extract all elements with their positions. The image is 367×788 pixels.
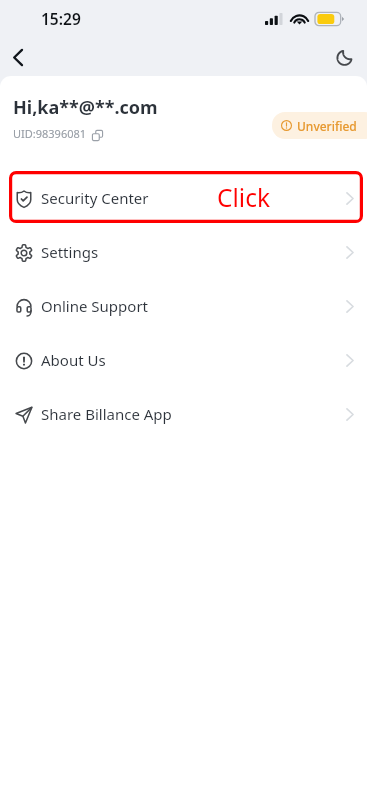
button[interactable]: Settings [0,225,367,279]
staticText: Unverified [297,118,357,134]
staticText: UID:98396081 [13,126,87,141]
button[interactable]: Online Support [0,279,367,333]
button[interactable]: Back [0,39,36,75]
staticText: Share Billance App [41,404,172,424]
staticText: Click [217,181,270,214]
button[interactable]: Unverified [272,112,367,139]
button[interactable]: Copy UID [92,130,103,141]
staticText: About Us [41,350,106,370]
staticText: Online Support [41,296,148,316]
button[interactable]: Dark mode [326,39,362,75]
button[interactable]: About Us [0,333,367,387]
staticText: Security Center [41,188,149,208]
staticText: 15:29 [41,8,81,29]
staticText: Hi,ka**@**.com [13,95,158,120]
button[interactable]: Security Center [0,171,367,225]
staticText: Settings [41,242,99,262]
button[interactable]: Share Billance App [0,387,367,441]
